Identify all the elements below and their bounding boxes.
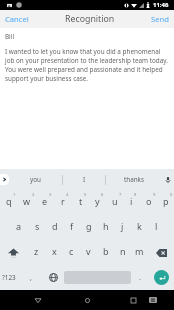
- button[interactable]: Comma: [18, 265, 43, 290]
- button[interactable]: Shift: [0, 240, 27, 265]
- staticText: w: [23, 195, 31, 207]
- staticText: h: [103, 220, 109, 232]
- button[interactable]: you: [9, 169, 62, 190]
- staticText: r: [61, 195, 65, 207]
- button[interactable]: Home: [52, 290, 122, 310]
- button[interactable]: w: [18, 190, 36, 215]
- button[interactable]: I: [63, 169, 105, 190]
- staticText: k: [137, 220, 142, 232]
- staticText: 5: [84, 192, 87, 198]
- staticText: ?123: [2, 273, 16, 282]
- staticText: v: [86, 245, 91, 257]
- button[interactable]: n: [114, 240, 131, 265]
- staticText: 4: [66, 192, 69, 198]
- button[interactable]: c: [63, 240, 80, 265]
- staticText: x: [52, 245, 57, 257]
- button[interactable]: f: [63, 215, 80, 240]
- button[interactable]: d: [46, 215, 63, 240]
- staticText: c: [69, 245, 74, 257]
- button[interactable]: b: [97, 240, 114, 265]
- button[interactable]: Back: [24, 290, 52, 310]
- staticText: 1: [13, 192, 16, 198]
- staticText: Recognition: [65, 13, 115, 25]
- staticText: s: [35, 220, 40, 232]
- staticText: I wanted to let you know that you did a …: [5, 47, 168, 83]
- staticText: .: [139, 273, 141, 283]
- button[interactable]: y: [89, 190, 106, 215]
- staticText: 2: [32, 192, 35, 198]
- button[interactable]: More suggestions: [0, 174, 9, 185]
- staticText: l: [155, 220, 158, 232]
- button[interactable]: Backspace: [148, 240, 174, 265]
- staticText: 7: [119, 192, 122, 198]
- button[interactable]: Enter: [154, 270, 169, 285]
- button[interactable]: o: [140, 190, 157, 215]
- staticText: 9: [153, 192, 156, 198]
- button[interactable]: r: [54, 190, 72, 215]
- staticText: you: [30, 175, 41, 184]
- staticText: i: [130, 195, 133, 207]
- button[interactable]: g: [80, 215, 97, 240]
- button[interactable]: Send: [146, 11, 174, 27]
- staticText: 6: [101, 192, 104, 198]
- staticText: 11:46: [153, 1, 169, 9]
- staticText: z: [34, 245, 39, 257]
- staticText: I: [83, 175, 86, 184]
- staticText: n: [120, 245, 126, 257]
- staticText: 3: [49, 192, 52, 198]
- staticText: f: [70, 220, 74, 232]
- button[interactable]: z: [27, 240, 45, 265]
- button[interactable]: Hide keyboard: [145, 290, 161, 310]
- staticText: j: [121, 220, 124, 232]
- button[interactable]: Change language: [43, 265, 64, 290]
- button[interactable]: x: [45, 240, 63, 265]
- button[interactable]: q: [0, 190, 18, 215]
- button[interactable]: m: [131, 240, 148, 265]
- staticText: m: [135, 245, 144, 257]
- staticText: p: [163, 195, 169, 207]
- button[interactable]: v: [80, 240, 97, 265]
- button[interactable]: k: [131, 215, 148, 240]
- button[interactable]: p: [157, 190, 174, 215]
- button[interactable]: Voice input: [162, 169, 174, 190]
- staticText: y: [95, 195, 100, 207]
- button[interactable]: h: [97, 215, 114, 240]
- button[interactable]: e: [36, 190, 54, 215]
- button[interactable]: t: [72, 190, 89, 215]
- staticText: thanks: [124, 175, 144, 184]
- staticText: 0: [170, 192, 173, 198]
- button[interactable]: s: [28, 215, 46, 240]
- staticText: 8: [134, 192, 137, 198]
- staticText: q: [6, 195, 12, 207]
- button[interactable]: Cancel: [0, 11, 34, 27]
- button[interactable]: l: [148, 215, 165, 240]
- button[interactable]: ?123: [0, 265, 18, 290]
- staticText: Bill: [5, 32, 15, 41]
- staticText: d: [52, 220, 58, 232]
- staticText: Send: [151, 14, 169, 24]
- button[interactable]: j: [114, 215, 131, 240]
- staticText: o: [146, 195, 152, 207]
- staticText: Cancel: [5, 14, 29, 24]
- button[interactable]: thanks: [106, 169, 162, 190]
- button[interactable]: i: [123, 190, 140, 215]
- staticText: e: [42, 195, 48, 207]
- button[interactable]: u: [106, 190, 123, 215]
- button[interactable]: Recents: [122, 290, 145, 310]
- button[interactable]: a: [10, 215, 28, 240]
- staticText: u: [112, 195, 118, 207]
- staticText: ,: [30, 273, 32, 283]
- button[interactable]: Period: [131, 265, 148, 290]
- staticText: b: [103, 245, 109, 257]
- staticText: a: [16, 220, 22, 232]
- staticText: g: [86, 220, 92, 232]
- staticText: t: [79, 195, 83, 207]
